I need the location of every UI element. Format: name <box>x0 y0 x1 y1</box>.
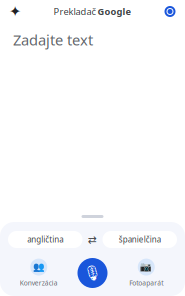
staticText: 🎙 <box>83 265 102 281</box>
button[interactable]: Saved <box>5 1 25 21</box>
staticText: Prekladač <box>53 5 95 18</box>
button[interactable]: 👥 <box>15 259 63 287</box>
staticText: 📷 <box>140 262 152 272</box>
staticText: ⇄ <box>88 233 97 245</box>
staticText: Google <box>97 5 131 18</box>
button[interactable]: španielčina <box>102 231 177 248</box>
staticText: angličtina <box>27 234 63 245</box>
staticText: Konverzácia <box>20 279 58 287</box>
staticText: španielčina <box>119 234 161 245</box>
button[interactable]: 📷 <box>122 259 170 287</box>
staticText: Fotoaparát <box>129 279 163 287</box>
button[interactable]: Swap languages <box>82 231 102 248</box>
button[interactable]: Zadajte text <box>0 20 185 49</box>
button[interactable]: Speak <box>77 258 107 288</box>
staticText: Zadajte text <box>13 30 93 49</box>
button[interactable]: angličtina <box>8 231 82 248</box>
button[interactable]: Account <box>160 1 180 21</box>
staticText: 👥 <box>33 262 45 272</box>
staticText: ✦ <box>9 3 21 20</box>
